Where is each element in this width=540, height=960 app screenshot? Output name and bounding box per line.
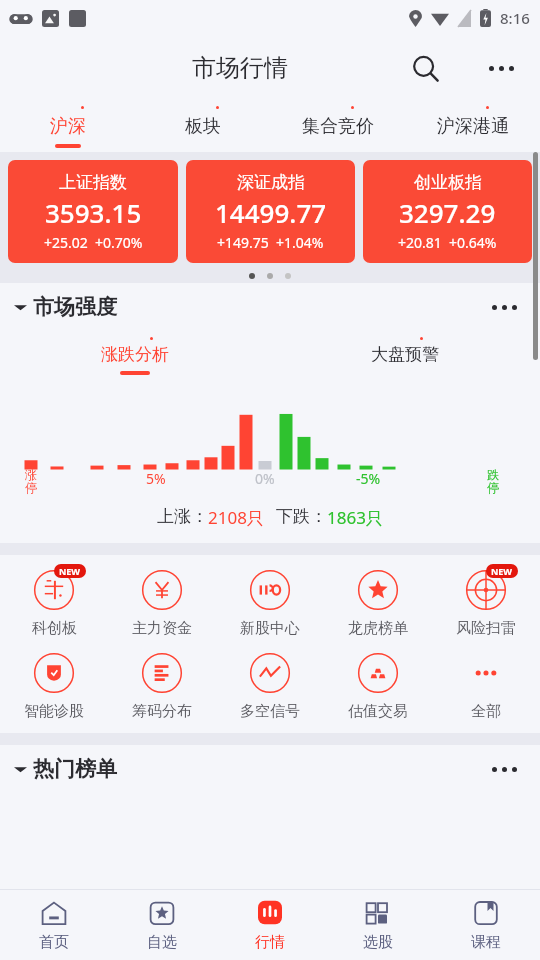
button[interactable]: 行情 [216, 890, 324, 960]
button[interactable]: More [482, 285, 526, 329]
staticText: 课程 [471, 933, 501, 952]
button[interactable]: 上证指数 [8, 160, 178, 263]
staticText: 深证成指 [237, 172, 305, 193]
button[interactable]: 沪深港通 [405, 100, 540, 152]
staticText: +149.75 [217, 233, 269, 252]
staticText: +1.04% [276, 233, 324, 252]
staticText: 多空信号 [240, 702, 300, 721]
staticText: 下跌： [276, 506, 327, 527]
button[interactable]: 选股 [324, 890, 432, 960]
staticText: 创业板指 [414, 172, 482, 193]
staticText: 热门榜单 [33, 756, 117, 782]
staticText: NEW [491, 565, 513, 577]
staticText: 5% [146, 469, 166, 488]
staticText: 3297.29 [399, 195, 496, 230]
button[interactable]: 深证成指 [186, 160, 355, 263]
button[interactable]: 全部 [432, 650, 540, 721]
staticText: 市场行情 [192, 53, 288, 83]
button[interactable]: 新股中心 [216, 567, 324, 638]
staticText: 市场强度 [33, 294, 117, 320]
button[interactable]: 课程 [432, 890, 540, 960]
staticText: 8:16 [500, 8, 530, 28]
staticText: 风险扫雷 [456, 619, 516, 638]
staticText: 跌 停 [487, 467, 499, 495]
button[interactable]: More options [478, 45, 524, 91]
staticText: 主力资金 [132, 619, 192, 638]
staticText: 智能诊股 [24, 702, 84, 721]
button[interactable]: 龙虎榜单 [324, 567, 432, 638]
staticText: 行情 [255, 933, 285, 952]
staticText: 涨 停 [25, 467, 37, 495]
staticText: 沪深 [50, 115, 86, 138]
button[interactable]: 估值交易 [324, 650, 432, 721]
button[interactable]: More [482, 747, 526, 791]
staticText: 板块 [185, 115, 221, 138]
staticText: +25.02 [44, 233, 88, 252]
staticText: 大盘预警 [371, 344, 439, 365]
staticText: 14499.77 [215, 195, 327, 230]
button[interactable]: Search [402, 45, 448, 91]
staticText: 全部 [471, 702, 501, 721]
button[interactable]: 集合竞价 [270, 100, 405, 152]
staticText: 3593.15 [45, 195, 142, 230]
staticText: +0.64% [449, 233, 497, 252]
button[interactable]: 板块 [135, 100, 270, 152]
button[interactable]: NEW [432, 567, 540, 638]
button[interactable]: 沪深 [0, 100, 135, 152]
staticText: 估值交易 [348, 702, 408, 721]
staticText: +20.81 [398, 233, 442, 252]
button[interactable]: 创业板指 [363, 160, 532, 263]
staticText: 1863只 [327, 506, 383, 529]
staticText: 筹码分布 [132, 702, 192, 721]
staticText: 新股中心 [240, 619, 300, 638]
staticText: 集合竞价 [302, 115, 374, 138]
button[interactable]: 主力资金 [108, 567, 216, 638]
staticText: 涨跌分析 [101, 344, 169, 365]
button[interactable]: 筹码分布 [108, 650, 216, 721]
staticText: 上证指数 [59, 172, 127, 193]
staticText: 首页 [39, 933, 69, 952]
staticText: 自选 [147, 933, 177, 952]
staticText: -5% [356, 469, 381, 488]
staticText: 沪深港通 [437, 115, 509, 138]
staticText: 2108只 [208, 506, 264, 529]
button[interactable]: 涨跌分析 [0, 331, 270, 377]
staticText: 0% [255, 469, 275, 488]
button[interactable]: 自选 [108, 890, 216, 960]
button[interactable]: 智能诊股 [0, 650, 108, 721]
staticText: 龙虎榜单 [348, 619, 408, 638]
staticText: 科创板 [32, 619, 77, 638]
button[interactable]: NEW [0, 567, 108, 638]
staticText: +0.70% [95, 233, 143, 252]
button[interactable]: 大盘预警 [270, 331, 540, 377]
button[interactable]: 多空信号 [216, 650, 324, 721]
staticText: 上涨： [157, 506, 208, 527]
button[interactable]: 首页 [0, 890, 108, 960]
staticText: 选股 [363, 933, 393, 952]
staticText: NEW [59, 565, 81, 577]
